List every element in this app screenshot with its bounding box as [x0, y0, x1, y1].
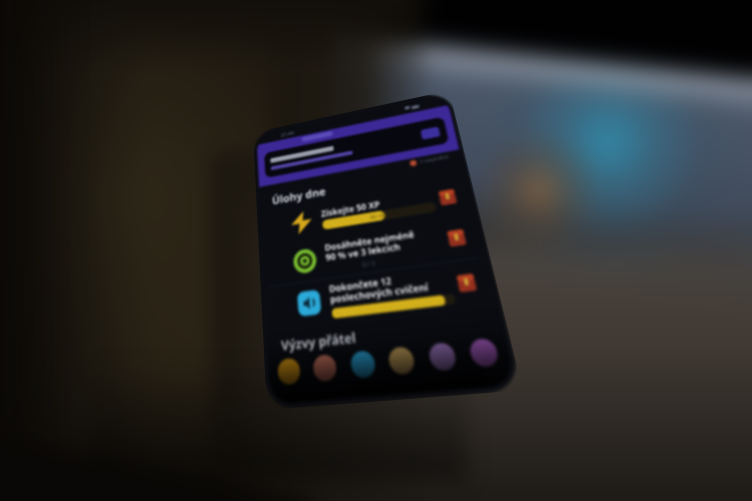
staticText: Získejte 50 XP [320, 198, 381, 219]
button[interactable]: Přítel [277, 358, 301, 385]
staticText: Dokončete 12 poslechových cvičení [328, 269, 429, 306]
staticText: 3 nesplněné [419, 153, 449, 165]
button[interactable]: Přejít [264, 116, 450, 178]
staticText: 29 / 50 [369, 212, 387, 221]
staticText: 0 / 3 [362, 259, 376, 269]
button[interactable]: Přítel [387, 346, 416, 375]
button[interactable]: Získejte 50 XP [260, 174, 475, 247]
staticText: Dosáhněte nejméně 90 % ve 3 lekcích [324, 227, 418, 264]
staticText: Úlohy dne [271, 183, 327, 207]
button[interactable]: Přítel [468, 338, 500, 368]
button[interactable]: Přítel [312, 354, 338, 382]
staticText: Výzvy přátel [281, 328, 357, 354]
button[interactable]: Přítel [350, 350, 377, 378]
button[interactable]: Dokončete 12 poslechových cvičení [264, 257, 497, 330]
button[interactable]: Přítel [427, 342, 458, 371]
button[interactable]: Přejít [420, 126, 441, 140]
staticText: 21:44 [281, 129, 295, 138]
button[interactable]: Dosáhněte nejméně 90 % ve 3 lekcích [262, 214, 485, 287]
